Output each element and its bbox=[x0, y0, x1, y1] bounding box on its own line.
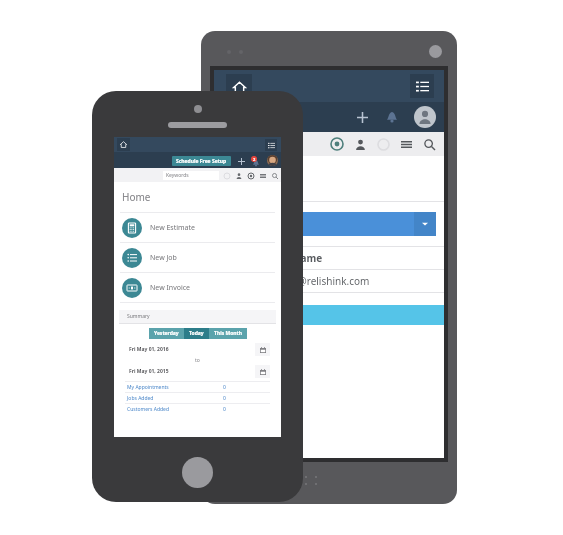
staticText: Jobs Added bbox=[127, 395, 154, 402]
staticText: Yesterday bbox=[154, 330, 179, 337]
staticText: Today bbox=[189, 330, 204, 337]
button[interactable]: Add bbox=[237, 157, 245, 165]
button[interactable]: Jobs Added bbox=[127, 393, 268, 403]
staticText: 2 bbox=[253, 157, 256, 162]
button[interactable]: Contacts bbox=[235, 172, 242, 179]
button[interactable]: Home bbox=[117, 138, 130, 151]
button[interactable]: Profile bbox=[414, 106, 436, 128]
button[interactable]: List bbox=[259, 172, 266, 179]
staticText: Keywords bbox=[166, 172, 189, 179]
button[interactable]: Keywords bbox=[163, 171, 219, 180]
button[interactable]: Target bbox=[330, 137, 344, 151]
button[interactable]: Notifications bbox=[384, 109, 400, 125]
button[interactable]: Home bbox=[226, 74, 252, 100]
button[interactable]: List bbox=[399, 137, 413, 151]
button[interactable]: Menu bbox=[410, 74, 434, 98]
button[interactable]: Fri May 01, 2015 bbox=[125, 365, 270, 378]
button[interactable]: New Job bbox=[114, 243, 281, 272]
staticText: to bbox=[195, 357, 200, 364]
button[interactable]: Profile bbox=[267, 155, 278, 166]
button[interactable]: Today bbox=[189, 328, 204, 339]
staticText: 0 bbox=[223, 395, 226, 402]
staticText: Home bbox=[122, 190, 151, 204]
staticText: David@relishink.com bbox=[271, 274, 370, 288]
staticText: This Month bbox=[214, 330, 242, 337]
staticText: Schedule Free Setup bbox=[176, 158, 227, 165]
staticText: New Job bbox=[150, 253, 177, 263]
staticText: Username bbox=[271, 251, 323, 265]
button[interactable]: Refresh bbox=[376, 137, 390, 151]
button[interactable]: Customers Added bbox=[127, 404, 268, 414]
button[interactable]: Fri May 01, 2016 bbox=[125, 343, 270, 356]
button[interactable]: Menu bbox=[265, 139, 277, 151]
staticText: Fri May 01, 2015 bbox=[129, 368, 169, 375]
staticText: Summary bbox=[127, 313, 150, 320]
staticText: New Invoice bbox=[150, 283, 191, 293]
button[interactable]: Schedule Free Setup bbox=[176, 156, 227, 166]
button[interactable]: New Invoice bbox=[114, 273, 281, 302]
button[interactable]: This Month bbox=[214, 328, 242, 339]
button[interactable] bbox=[214, 305, 444, 325]
button[interactable]: Contacts bbox=[353, 137, 367, 151]
staticText: ment bbox=[222, 168, 265, 191]
button[interactable]: New Estimate bbox=[114, 213, 281, 242]
button[interactable]: Notifications bbox=[251, 156, 261, 166]
staticText: My Appointments bbox=[127, 384, 169, 391]
staticText: Customers Added bbox=[127, 406, 169, 413]
button[interactable]: Search bbox=[271, 172, 278, 179]
button[interactable]: Yesterday bbox=[154, 328, 179, 339]
button[interactable]: My Appointments bbox=[127, 382, 268, 392]
button[interactable]: Add bbox=[354, 109, 370, 125]
button[interactable]: More bbox=[414, 212, 436, 236]
staticText: 0 bbox=[223, 384, 226, 391]
button[interactable]: + Add bbox=[214, 212, 414, 236]
button[interactable]: Search bbox=[422, 137, 436, 151]
staticText: 0 bbox=[223, 406, 226, 413]
staticText: New Estimate bbox=[150, 223, 195, 233]
button[interactable]: Home button bbox=[182, 457, 213, 488]
staticText: Fri May 01, 2016 bbox=[129, 346, 169, 353]
button[interactable]: Target bbox=[247, 172, 254, 179]
